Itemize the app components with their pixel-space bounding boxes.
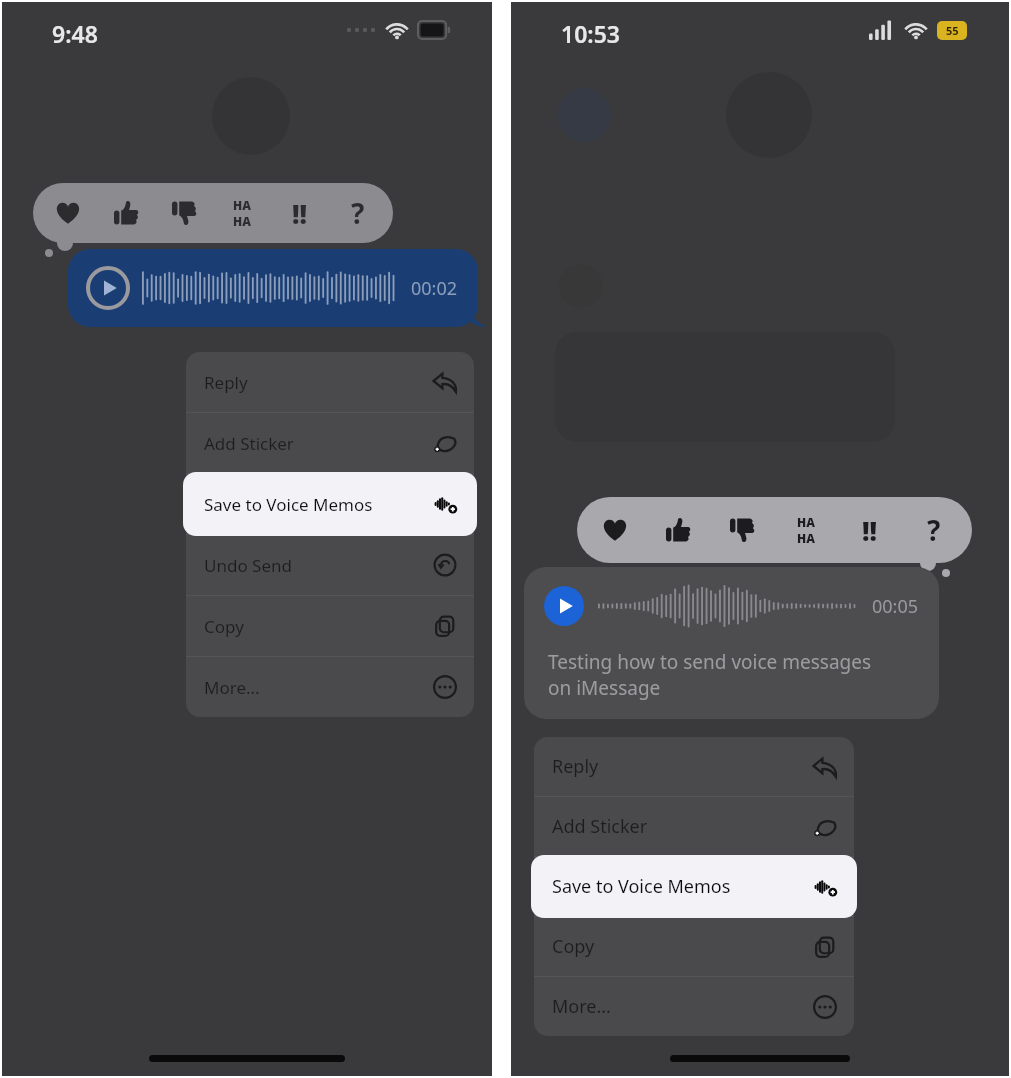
staticText: Save to Voice Memos	[204, 493, 432, 516]
button[interactable]: Play voice message	[68, 249, 478, 327]
button[interactable]: Thumbs up reaction	[646, 497, 710, 563]
button[interactable]: More...	[186, 657, 474, 717]
staticText: !!	[862, 513, 878, 548]
button[interactable]: Love reaction	[39, 183, 97, 243]
staticText: HA	[233, 213, 251, 229]
staticText: HA	[233, 197, 251, 213]
staticText: Copy	[552, 934, 812, 959]
staticText: 00:02	[411, 276, 458, 301]
staticText: More...	[552, 994, 812, 1019]
button[interactable]: Exclamation reaction	[838, 497, 902, 563]
button[interactable]: Exclamation reaction	[271, 183, 329, 243]
button[interactable]: Copy	[186, 596, 474, 656]
button[interactable]: Add Sticker	[186, 413, 474, 473]
button[interactable]: Play voice message	[524, 567, 939, 719]
button[interactable]: Play voice message	[88, 268, 128, 308]
button[interactable]: Save to Voice Memos	[183, 472, 477, 536]
button[interactable]: Thumbs up reaction	[97, 183, 155, 243]
staticText: 9:48	[52, 18, 98, 49]
staticText: Undo Send	[204, 554, 432, 577]
staticText: Testing how to send voice messages on iM…	[548, 649, 893, 701]
button[interactable]: Save to Voice Memos	[531, 855, 857, 918]
button[interactable]: Save to Voice Memos	[186, 474, 474, 534]
button[interactable]: Add Sticker	[534, 797, 854, 856]
staticText: 10:53	[561, 18, 620, 49]
button[interactable]: Copy	[534, 917, 854, 976]
button[interactable]: Haha reaction	[213, 183, 271, 243]
button[interactable]: Reply	[186, 352, 474, 412]
staticText: ?	[351, 194, 365, 232]
staticText: 55	[946, 23, 959, 38]
button[interactable]: Haha reaction	[774, 497, 838, 563]
staticText: Reply	[552, 754, 812, 779]
button[interactable]: Question reaction	[329, 183, 387, 243]
button[interactable]: Undo Send	[186, 535, 474, 595]
staticText: Save to Voice Memos	[552, 874, 812, 899]
button[interactable]: Love reaction	[583, 497, 646, 563]
staticText: More...	[204, 676, 432, 699]
button[interactable]: Play voice message	[544, 586, 584, 626]
button[interactable]: More...	[534, 977, 854, 1036]
button[interactable]: Question reaction	[902, 497, 966, 563]
button[interactable]: Save to Voice Memos	[534, 857, 854, 916]
staticText: ?	[927, 511, 941, 549]
staticText: 00:05	[872, 594, 919, 619]
staticText: HA	[797, 530, 815, 546]
staticText: Reply	[204, 371, 432, 394]
staticText: Copy	[204, 615, 432, 638]
button[interactable]: Thumbs down reaction	[155, 183, 213, 243]
staticText: !!	[292, 196, 308, 231]
button[interactable]: Reply	[534, 737, 854, 796]
staticText: HA	[797, 514, 815, 530]
button[interactable]: Thumbs down reaction	[710, 497, 774, 563]
staticText: Add Sticker	[552, 814, 812, 839]
staticText: Add Sticker	[204, 432, 432, 455]
staticText: Save to Voice Memos	[552, 874, 812, 899]
staticText: Save to Voice Memos	[204, 493, 432, 516]
